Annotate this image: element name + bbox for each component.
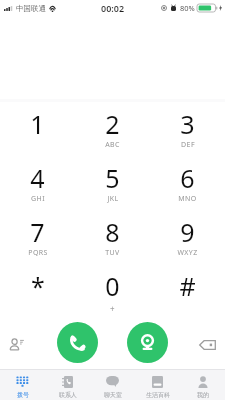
button[interactable]: 8: [75, 217, 150, 271]
staticText: 联系人: [59, 391, 77, 399]
staticText: DEF: [181, 140, 195, 150]
button[interactable]: Add contact: [5, 332, 29, 356]
staticText: 拨号: [17, 391, 29, 399]
button[interactable]: 4: [0, 163, 75, 217]
button[interactable]: 生活百科: [135, 370, 180, 400]
staticText: 9: [180, 215, 195, 249]
staticText: 00:02: [101, 2, 125, 14]
staticText: 6: [180, 161, 195, 195]
button[interactable]: 拨号: [0, 370, 45, 400]
staticText: PQRS: [28, 248, 48, 258]
staticText: JKL: [107, 194, 119, 204]
staticText: 3: [180, 107, 195, 141]
staticText: 7: [30, 215, 45, 249]
button[interactable]: Video call: [127, 322, 168, 363]
staticText: 4: [30, 161, 45, 195]
button[interactable]: 0: [75, 271, 150, 325]
staticText: 5: [105, 161, 120, 195]
button[interactable]: 我的: [180, 370, 225, 400]
staticText: 生活百科: [146, 391, 170, 399]
staticText: TUV: [105, 248, 120, 258]
button[interactable]: 9: [150, 217, 225, 271]
button[interactable]: 5: [75, 163, 150, 217]
button[interactable]: 7: [0, 217, 75, 271]
staticText: 我的: [197, 391, 209, 399]
staticText: ABC: [105, 140, 120, 150]
staticText: MNO: [178, 194, 197, 204]
button[interactable]: 3: [150, 109, 225, 163]
staticText: 80%: [180, 3, 195, 13]
staticText: 聊天室: [104, 391, 122, 399]
button[interactable]: 聊天室: [90, 370, 135, 400]
staticText: *: [31, 269, 45, 303]
staticText: 1: [30, 107, 45, 141]
button[interactable]: Call: [57, 322, 98, 363]
staticText: 0: [105, 269, 120, 303]
staticText: +: [110, 303, 115, 314]
staticText: WXYZ: [177, 248, 198, 258]
button[interactable]: Backspace: [195, 333, 219, 357]
button[interactable]: *: [0, 271, 75, 325]
button[interactable]: #: [150, 271, 225, 325]
staticText: 中国联通: [16, 4, 46, 13]
button[interactable]: 联系人: [45, 370, 90, 400]
staticText: GHI: [31, 194, 45, 204]
staticText: 8: [105, 215, 120, 249]
staticText: #: [179, 269, 196, 303]
staticText: 2: [105, 107, 120, 141]
button[interactable]: 1: [0, 109, 75, 163]
button[interactable]: 6: [150, 163, 225, 217]
button[interactable]: 2: [75, 109, 150, 163]
